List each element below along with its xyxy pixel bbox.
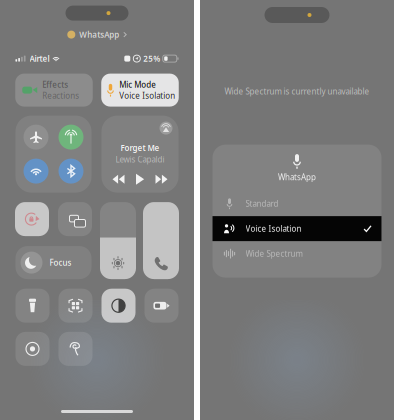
button[interactable]: Dark Mode [101, 289, 135, 323]
button[interactable]: Airplane Mode [23, 125, 48, 150]
button[interactable]: Focus [15, 246, 91, 279]
staticText: Wide Spectrum [245, 248, 302, 259]
staticText: Reactions [42, 90, 79, 101]
button[interactable]: AirPlay [153, 116, 178, 141]
button[interactable]: Brightness [100, 202, 136, 279]
staticText: Standard [245, 198, 278, 209]
staticText: Voice Isolation [119, 90, 175, 101]
button[interactable]: Bluetooth [58, 159, 83, 184]
button[interactable]: Wi-Fi [23, 159, 48, 184]
button[interactable]: Next track [155, 175, 167, 184]
button[interactable]: Flashlight [15, 289, 49, 323]
button[interactable]: Effects [15, 74, 93, 107]
button[interactable]: Voice Isolation [212, 216, 381, 241]
staticText: Lewis Capaldi [115, 154, 164, 165]
staticText: Forget Me [120, 142, 159, 153]
staticText: Voice Isolation [245, 223, 301, 234]
staticText: WhatsApp [79, 29, 119, 40]
staticText: Mic Mode [119, 79, 156, 90]
button[interactable]: Code Scanner [58, 289, 92, 323]
staticText: Wide Spectrum is currently unavailable [224, 86, 369, 97]
button[interactable]: Screen Mirroring [58, 202, 92, 236]
button[interactable]: Previous track [112, 175, 124, 184]
button[interactable]: Standard [212, 191, 381, 216]
button[interactable]: Play [135, 174, 144, 185]
button[interactable]: Hearing [58, 332, 92, 366]
button[interactable]: Rotation Lock [15, 202, 49, 236]
button[interactable]: WhatsApp [67, 30, 127, 40]
staticText: Focus [49, 257, 71, 268]
button[interactable]: Low Power Mode [144, 289, 178, 323]
staticText: Effects [42, 79, 68, 90]
button[interactable]: Screen Recording [15, 332, 49, 366]
staticText: Airtel [29, 53, 49, 64]
button[interactable]: Cellular Data [58, 125, 83, 150]
button[interactable]: Mic Mode [101, 74, 179, 107]
button[interactable]: Wide Spectrum [212, 241, 381, 266]
button[interactable]: Volume [143, 202, 179, 279]
staticText: 25% [143, 53, 160, 64]
staticText: WhatsApp [278, 172, 316, 182]
